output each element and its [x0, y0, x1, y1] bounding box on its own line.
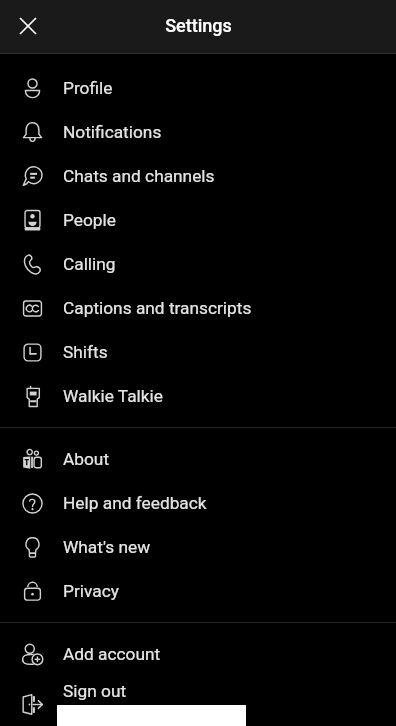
button[interactable]: About: [0, 437, 396, 481]
button[interactable]: Sign out: [0, 676, 396, 720]
staticText: People: [63, 210, 116, 230]
staticText: What's new: [63, 537, 151, 557]
staticText: Captions and transcripts: [63, 298, 252, 318]
staticText: Shifts: [63, 342, 108, 362]
staticText: Help and feedback: [63, 493, 207, 513]
staticText: About: [63, 449, 110, 469]
button[interactable]: Captions and transcripts: [0, 286, 396, 330]
staticText: Calling: [63, 254, 116, 274]
button[interactable]: Help and feedback: [0, 481, 396, 525]
button[interactable]: Chats and channels: [0, 154, 396, 198]
button[interactable]: Profile: [0, 66, 396, 110]
button[interactable]: Privacy: [0, 569, 396, 613]
staticText: Walkie Talkie: [63, 386, 163, 406]
staticText: Sign out: [63, 681, 127, 701]
button[interactable]: Shifts: [0, 330, 396, 374]
staticText: Settings: [165, 15, 232, 36]
button[interactable]: Notifications: [0, 110, 396, 154]
button[interactable]: Calling: [0, 242, 396, 286]
staticText: Chats and channels: [63, 166, 215, 186]
button[interactable]: People: [0, 198, 396, 242]
staticText: Privacy: [63, 581, 119, 601]
staticText: Profile: [63, 78, 113, 98]
button[interactable]: Close: [0, 0, 56, 53]
button[interactable]: What's new: [0, 525, 396, 569]
staticText: Add account: [63, 644, 161, 664]
staticText: Notifications: [63, 122, 162, 142]
button[interactable]: Add account: [0, 632, 396, 676]
button[interactable]: Walkie Talkie: [0, 374, 396, 418]
